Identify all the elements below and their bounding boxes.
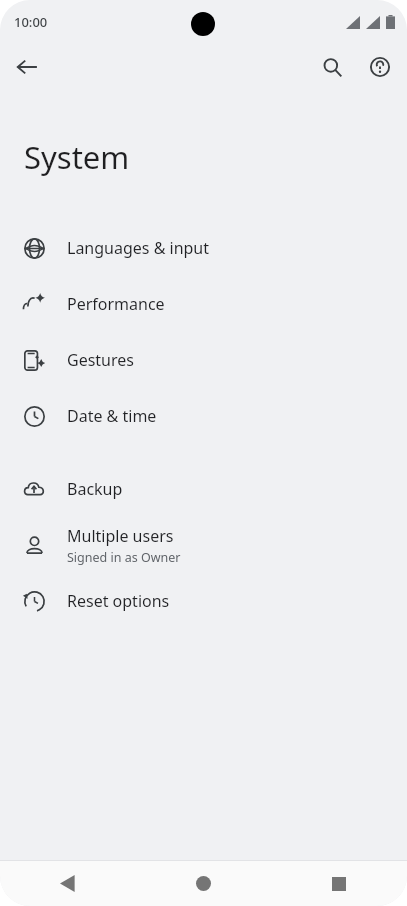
- staticText: Languages & input: [67, 237, 210, 259]
- button[interactable]: Gestures: [0, 332, 407, 388]
- staticText: System: [24, 136, 130, 178]
- button[interactable]: Back: [6, 46, 48, 88]
- button[interactable]: Multiple users: [0, 517, 407, 573]
- button[interactable]: Back: [0, 861, 135, 906]
- staticText: Backup: [67, 478, 123, 500]
- button[interactable]: Home: [135, 861, 271, 906]
- button[interactable]: Backup: [0, 461, 407, 517]
- staticText: Date & time: [67, 405, 157, 427]
- button[interactable]: Recent apps: [271, 861, 407, 906]
- button[interactable]: Languages & input: [0, 220, 407, 276]
- button[interactable]: Date & time: [0, 388, 407, 444]
- staticText: 10:00: [14, 13, 48, 31]
- staticText: Gestures: [67, 349, 134, 371]
- staticText: Multiple users: [67, 525, 174, 547]
- staticText: Performance: [67, 293, 165, 315]
- button[interactable]: Search: [311, 46, 353, 88]
- staticText: Signed in as Owner: [67, 549, 181, 566]
- staticText: Reset options: [67, 590, 170, 612]
- button[interactable]: Performance: [0, 276, 407, 332]
- button[interactable]: Help: [359, 46, 401, 88]
- button[interactable]: Reset options: [0, 573, 407, 629]
